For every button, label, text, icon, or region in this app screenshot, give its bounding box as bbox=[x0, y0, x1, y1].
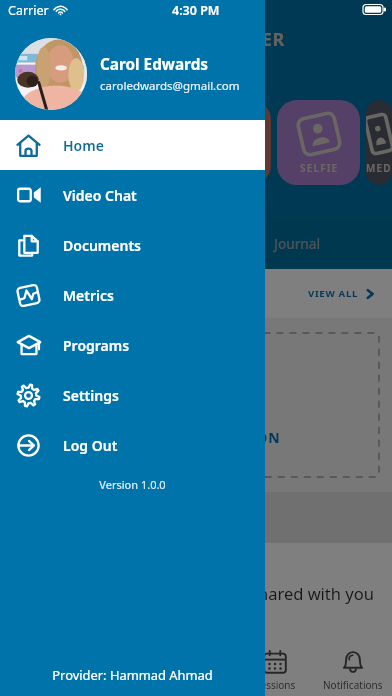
button[interactable]: Documents bbox=[0, 220, 265, 270]
staticText: caroledwards@gmail.com bbox=[100, 78, 240, 94]
staticText: MOOD bbox=[211, 161, 249, 175]
staticText: Carrier bbox=[8, 2, 49, 19]
button[interactable]: ADD NEW SESSION bbox=[13, 333, 379, 477]
staticText: Metrics bbox=[180, 678, 215, 692]
staticText: Version 1.0.0 bbox=[0, 477, 265, 492]
button[interactable]: Sessions bbox=[236, 645, 314, 696]
staticText: Metrics bbox=[63, 286, 114, 305]
staticText: Journal bbox=[274, 235, 321, 253]
button[interactable]: SELFIE bbox=[277, 100, 360, 185]
staticText: Log Out bbox=[63, 436, 118, 455]
button[interactable]: Home bbox=[0, 645, 79, 696]
staticText: Notifications bbox=[323, 678, 383, 692]
staticText: Video bbox=[105, 678, 132, 692]
staticText: Video Chat bbox=[63, 186, 137, 205]
staticText: Programs bbox=[63, 336, 130, 355]
staticText: Documents bbox=[63, 236, 141, 255]
staticText: SELFIE bbox=[300, 161, 339, 175]
staticText: Sessions bbox=[255, 678, 296, 692]
staticText: Provider: Hammad Ahmad bbox=[0, 666, 265, 684]
staticText: Home bbox=[25, 678, 54, 692]
staticText: Settings bbox=[63, 386, 119, 405]
staticText: 4:30 PM bbox=[172, 2, 220, 19]
staticText: Carol Edwards bbox=[100, 54, 208, 75]
staticText: VIEW ALL bbox=[308, 287, 359, 300]
button[interactable]: Metrics bbox=[0, 270, 265, 320]
button[interactable]: Video Chat bbox=[0, 170, 265, 220]
button[interactable]: Settings bbox=[0, 370, 265, 420]
button[interactable]: Notifications bbox=[314, 645, 392, 696]
staticText: JOURNEY MATTER bbox=[119, 27, 285, 52]
staticText: Home bbox=[63, 136, 104, 155]
button[interactable]: Log Out bbox=[0, 420, 265, 470]
staticText: ADD NEW SESSION bbox=[138, 428, 281, 447]
button[interactable]: Video bbox=[79, 645, 158, 696]
button[interactable]: MOOD bbox=[188, 100, 271, 185]
button[interactable]: VIEW ALL bbox=[308, 287, 376, 300]
staticText: MEDIA bbox=[366, 161, 392, 175]
staticText: Documents your provider has shared with … bbox=[16, 582, 374, 604]
button[interactable]: Metrics bbox=[158, 645, 236, 696]
button[interactable]: Programs bbox=[0, 320, 265, 370]
button[interactable]: Home bbox=[0, 120, 265, 170]
button[interactable]: MEDIA bbox=[366, 100, 392, 185]
